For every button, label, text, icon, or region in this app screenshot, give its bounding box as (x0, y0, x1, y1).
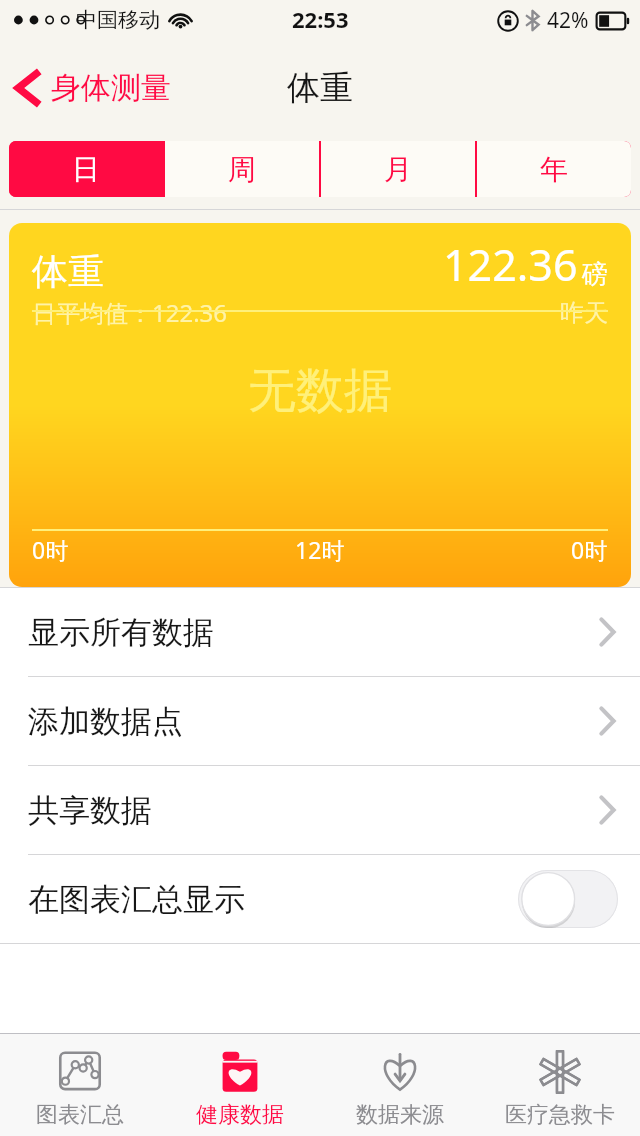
staticText: 显示所有数据 (28, 613, 214, 652)
staticText: 42% (547, 6, 589, 35)
staticText: 周 (228, 152, 256, 187)
staticText: 添加数据点 (28, 702, 183, 741)
staticText: 年 (540, 152, 568, 187)
button[interactable]: 健康数据 (160, 1034, 320, 1136)
staticText: 共享数据 (28, 791, 152, 830)
staticText: 健康数据 (196, 1101, 284, 1129)
button[interactable]: 日 (9, 141, 163, 197)
button[interactable]: 图表汇总 (0, 1034, 160, 1136)
staticText: 0时 (571, 534, 608, 565)
staticText: 日 (72, 152, 100, 187)
button[interactable]: 年 (477, 141, 631, 197)
staticText: 12时 (295, 534, 345, 565)
button[interactable]: 显示所有数据 (0, 588, 640, 676)
button[interactable]: 添加数据点 (0, 677, 640, 765)
staticText: 图表汇总 (36, 1101, 124, 1129)
button[interactable]: 月 (321, 141, 475, 197)
staticText: 0时 (32, 534, 69, 565)
staticText: 磅 (582, 258, 608, 291)
staticText: 日平均值：122.36 (32, 296, 228, 329)
staticText: 体重 (32, 249, 104, 294)
staticText: 中国移动 (76, 7, 160, 33)
staticText: 昨天 (560, 298, 608, 328)
staticText: 月 (384, 152, 412, 187)
button[interactable]: 共享数据 (0, 766, 640, 854)
staticText: 无数据 (248, 361, 392, 421)
button[interactable]: 在图表汇总显示 开关 (518, 870, 618, 928)
button[interactable]: 医疗急救卡 (480, 1034, 640, 1136)
button[interactable]: 身体测量 (0, 60, 185, 116)
staticText: 122.36 (443, 235, 578, 294)
staticText: 医疗急救卡 (505, 1101, 615, 1129)
staticText: 数据来源 (356, 1101, 444, 1129)
staticText: 22:53 (292, 4, 349, 34)
staticText: 在图表汇总显示 (28, 880, 245, 919)
button[interactable]: 数据来源 (320, 1034, 480, 1136)
staticText: 身体测量 (51, 69, 171, 107)
staticText: 体重 (287, 67, 353, 109)
button[interactable]: 周 (165, 141, 319, 197)
